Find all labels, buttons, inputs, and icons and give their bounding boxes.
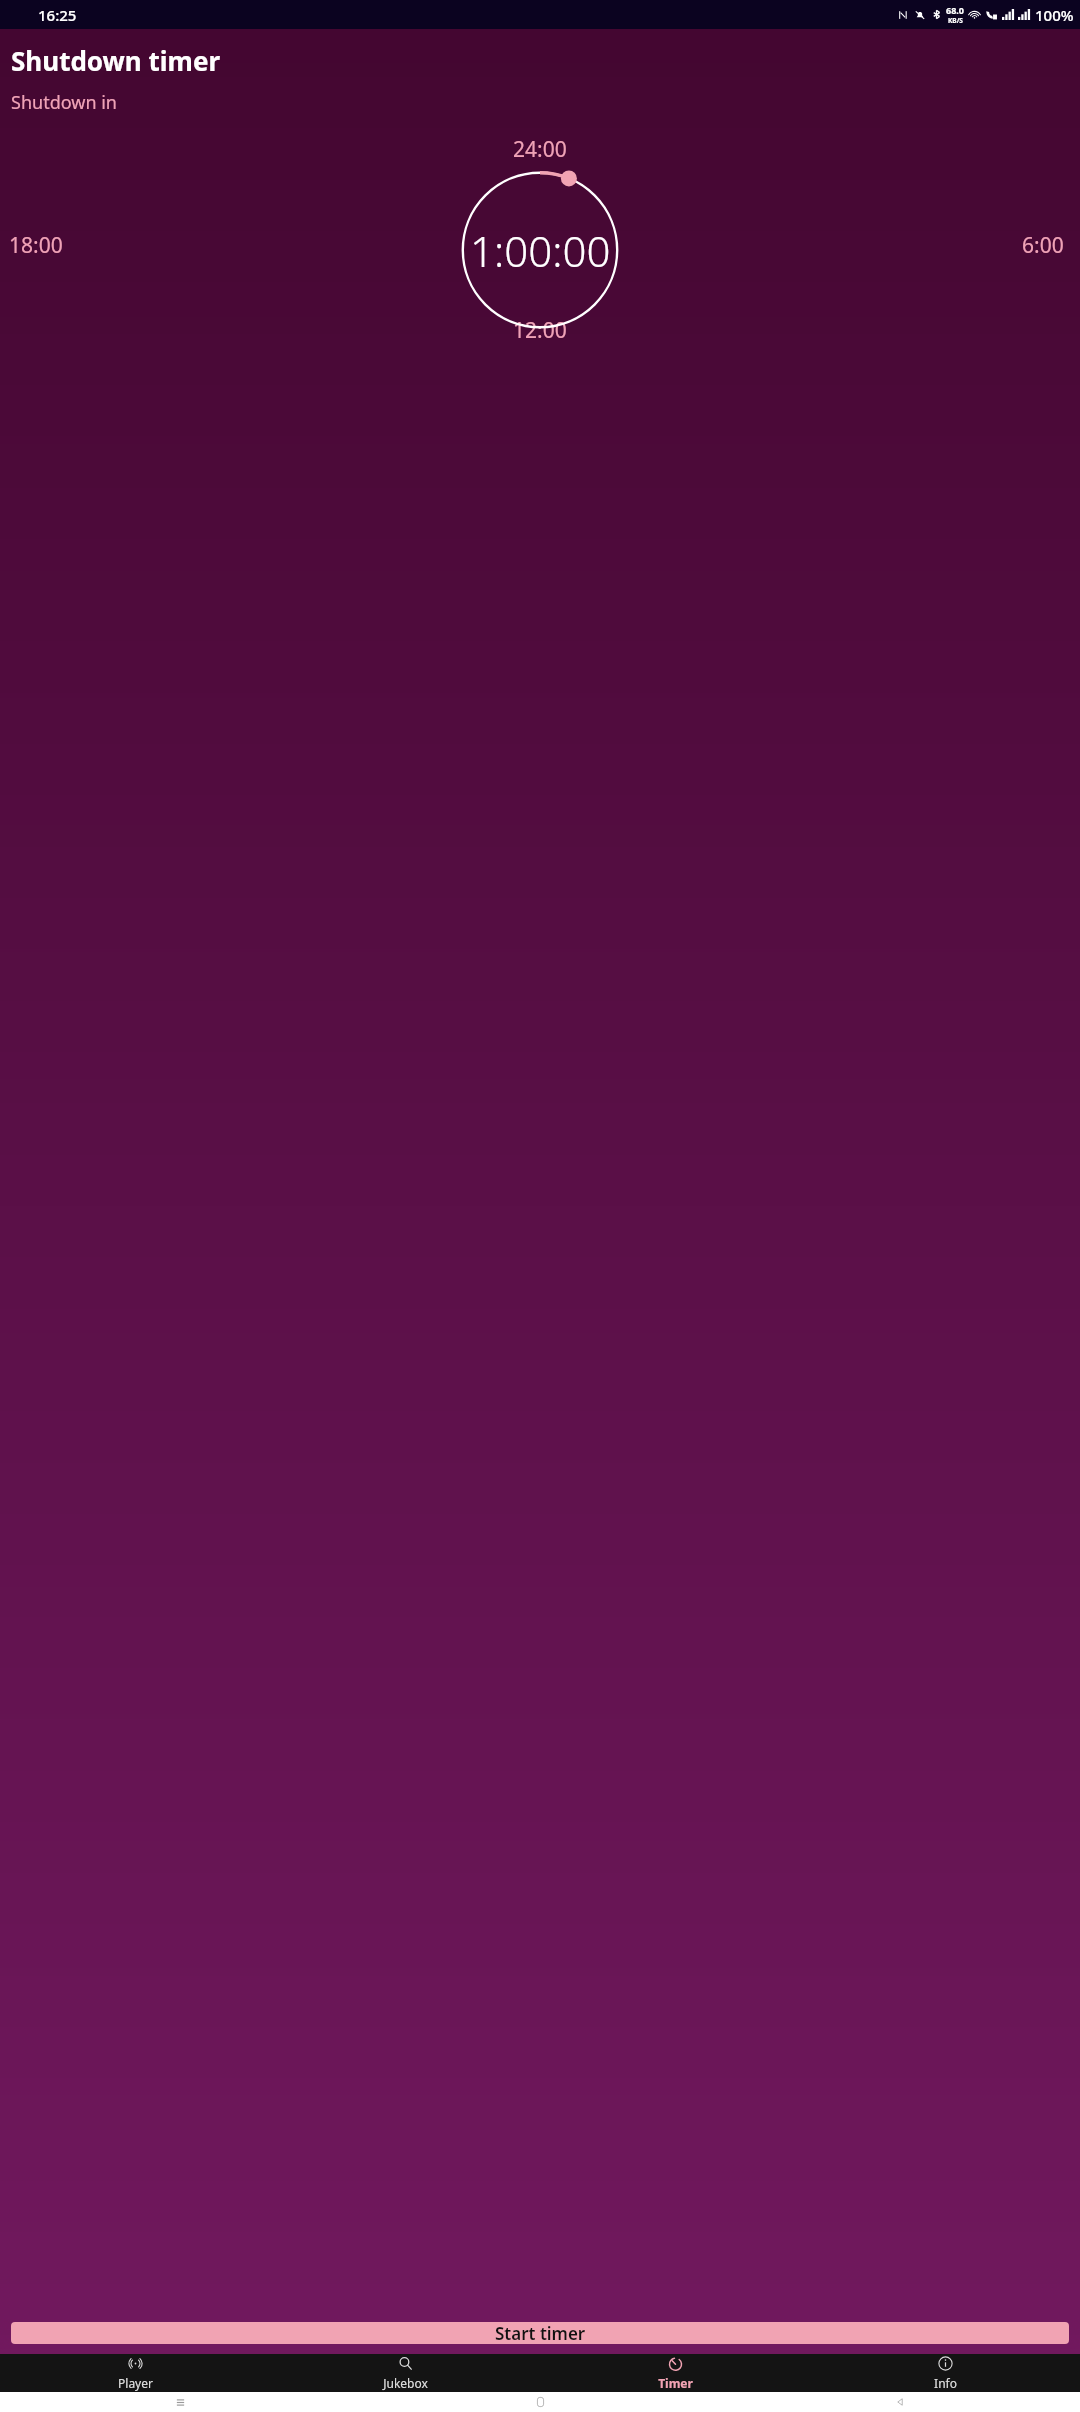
- staticText: 24:00: [513, 135, 567, 164]
- button[interactable]: Back: [893, 2395, 907, 2409]
- staticText: 12:00: [513, 316, 567, 345]
- staticText: 16:25: [38, 5, 77, 25]
- other: Info: [938, 2356, 953, 2371]
- staticText: KB/S: [948, 16, 963, 25]
- staticText: Shutdown in: [11, 90, 117, 115]
- staticText: Jukebox: [383, 2375, 428, 2391]
- staticText: 1:00:00: [470, 222, 611, 279]
- button[interactable]: Home: [535, 2395, 546, 2409]
- button[interactable]: Player: [0, 2354, 270, 2392]
- button[interactable]: 1:00:00: [457, 167, 623, 333]
- other: Player: [128, 2356, 143, 2371]
- other: Jukebox: [398, 2356, 413, 2371]
- staticText: 68.0: [946, 4, 964, 16]
- button[interactable]: Timer: [540, 2354, 810, 2392]
- button[interactable]: Info: [810, 2354, 1080, 2392]
- button[interactable]: Start timer: [11, 2322, 1069, 2344]
- staticText: Shutdown timer: [11, 43, 221, 78]
- button[interactable]: Recents: [174, 2396, 187, 2409]
- staticText: Player: [118, 2375, 153, 2391]
- staticText: 18:00: [9, 231, 63, 260]
- staticText: 100%: [1035, 5, 1074, 25]
- staticText: Timer: [658, 2375, 693, 2391]
- other: Timer: [668, 2356, 683, 2371]
- staticText: Start timer: [495, 2322, 586, 2344]
- button[interactable]: Jukebox: [270, 2354, 540, 2392]
- staticText: Info: [934, 2375, 957, 2391]
- staticText: 6:00: [1022, 231, 1064, 260]
